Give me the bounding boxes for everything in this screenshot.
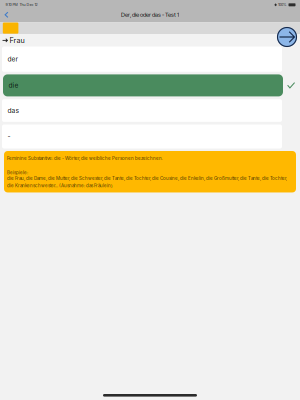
staticText: der — [7, 55, 18, 63]
button[interactable]: der — [2, 46, 282, 72]
button[interactable]: Back — [0, 9, 12, 21]
staticText: 9:10 PM — [5, 3, 17, 7]
button[interactable]: das — [2, 99, 282, 122]
staticText: das — [7, 106, 19, 115]
staticText: Frau — [9, 36, 24, 45]
staticText: - — [7, 132, 10, 141]
staticText: die Frau, die Dame, die Mutter, die Schw… — [7, 176, 287, 188]
button[interactable]: Next question — [277, 27, 297, 47]
staticText: Beispiele: — [7, 170, 28, 175]
staticText: 100% — [278, 3, 287, 7]
staticText: Der, die oder das - Test 1 — [121, 11, 179, 18]
staticText: Thu Dec 12 — [17, 3, 37, 7]
staticText: die — [8, 81, 18, 89]
button[interactable]: die — [3, 74, 283, 96]
staticText: Feminine Substantive: die - Wörter, die … — [7, 156, 163, 161]
